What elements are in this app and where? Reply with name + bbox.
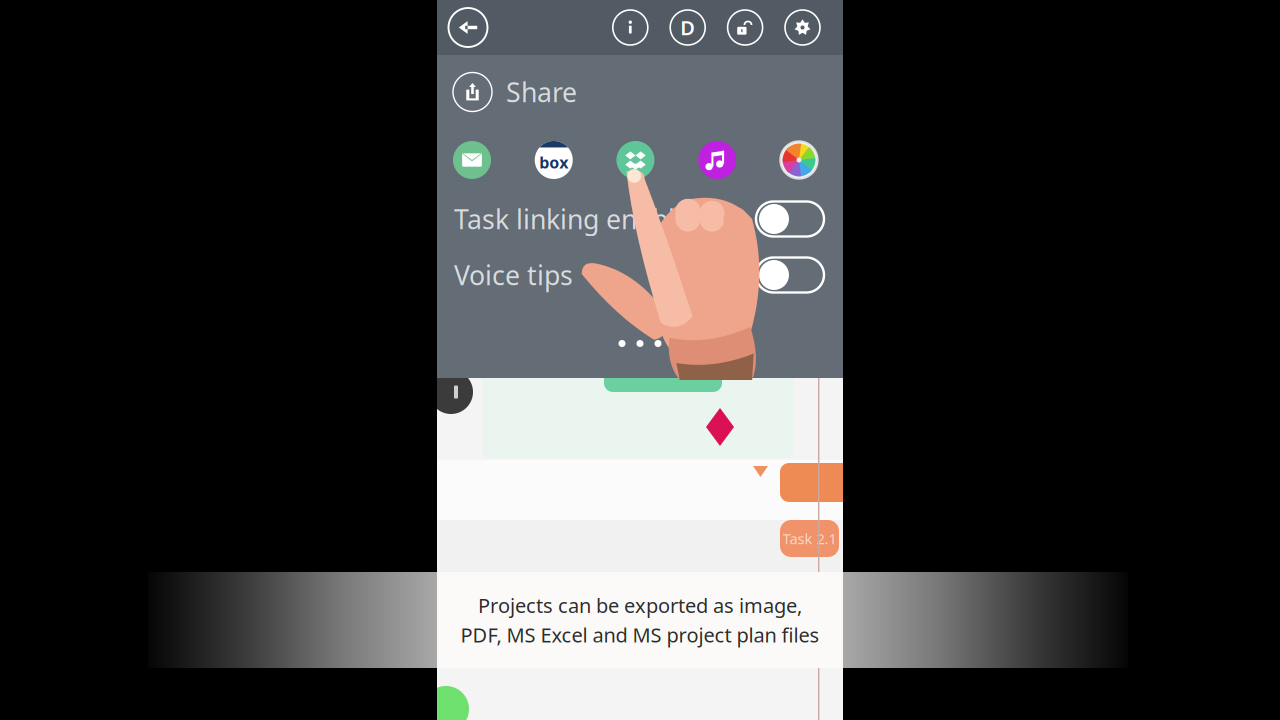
staticText: Share	[506, 74, 577, 110]
staticText: PDF, MS Excel and MS project plan files	[460, 621, 819, 648]
button[interactable]: Task linking enabled	[437, 191, 843, 247]
button[interactable]: Information	[607, 4, 654, 51]
button[interactable]: Share	[437, 55, 843, 129]
button[interactable]: Back	[442, 2, 493, 53]
button[interactable]: Mail	[453, 141, 491, 179]
staticText: Task 2.1	[782, 529, 836, 548]
staticText: D	[680, 14, 695, 41]
button[interactable]: iTunes	[698, 141, 736, 179]
button[interactable]: Settings	[779, 4, 826, 51]
button[interactable]: Box	[535, 141, 573, 179]
button[interactable]: Dropbox	[616, 141, 654, 179]
button[interactable]: Voice tips	[437, 247, 843, 303]
button[interactable]: Unlock	[722, 4, 769, 51]
staticText: Voice tips	[454, 257, 573, 293]
staticText: Projects can be exported as image,	[478, 592, 802, 618]
button[interactable]: Duration	[664, 4, 711, 51]
staticText: Task linking enabled	[454, 201, 706, 237]
staticText: box	[539, 152, 568, 173]
button[interactable]: Photos	[780, 141, 818, 179]
